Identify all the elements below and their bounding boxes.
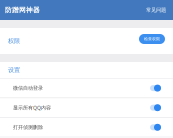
staticText: 显示所有QQ内容 xyxy=(13,104,51,111)
staticText: 检查权限 xyxy=(144,36,160,41)
staticText: 常见问题 xyxy=(146,7,166,13)
button[interactable]: 检查权限 xyxy=(139,34,165,44)
staticText: 微信自动登录 xyxy=(13,85,43,91)
button[interactable]: 打开侦测删除 xyxy=(0,118,173,137)
staticText: 防蹭网神器 xyxy=(5,6,40,14)
button[interactable]: 常见问题 xyxy=(138,3,166,17)
button[interactable]: 微信自动登录 xyxy=(0,79,173,98)
staticText: 设置 xyxy=(8,66,20,74)
button[interactable]: 显示所有QQ内容 xyxy=(0,98,173,117)
staticText: 打开侦测删除 xyxy=(13,124,43,130)
staticText: 权限 xyxy=(8,37,20,45)
